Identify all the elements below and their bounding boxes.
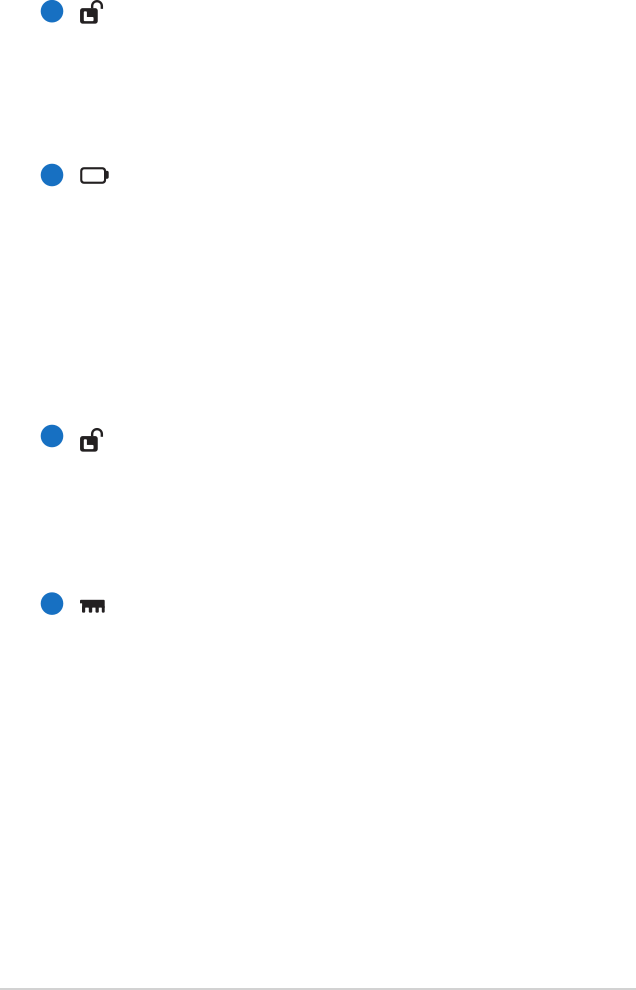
button[interactable]: Unlocked <box>0 409 636 463</box>
button[interactable]: Unlocked <box>0 0 636 38</box>
button[interactable]: Battery <box>0 148 636 202</box>
button[interactable]: Memory <box>0 577 636 631</box>
